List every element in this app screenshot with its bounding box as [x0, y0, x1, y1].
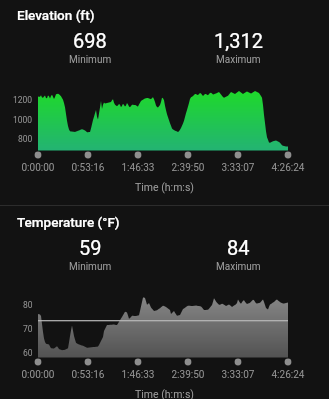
staticText: Maximum: [216, 261, 261, 273]
button[interactable]: Temperature (°F): [0, 207, 329, 399]
staticText: Maximum: [216, 54, 261, 66]
staticText: Time (h:m:s): [0, 181, 329, 193]
staticText: 59: [79, 236, 102, 259]
staticText: Elevation (ft): [17, 7, 95, 23]
staticText: Minimum: [69, 261, 112, 273]
staticText: Temperature (°F): [17, 214, 120, 230]
staticText: Time (h:m:s): [0, 388, 329, 399]
staticText: 84: [227, 236, 250, 259]
button[interactable]: Elevation (ft): [0, 0, 329, 205]
staticText: Minimum: [69, 54, 112, 66]
staticText: 1,312: [214, 29, 263, 52]
staticText: 698: [73, 29, 107, 52]
